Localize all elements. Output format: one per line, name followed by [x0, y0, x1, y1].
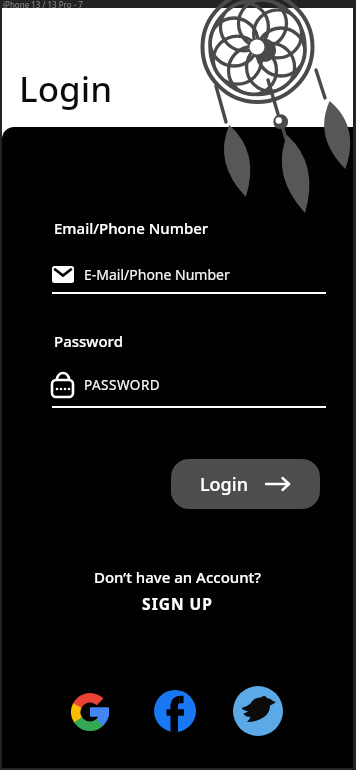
button[interactable] [70, 692, 110, 732]
staticText: Password [54, 331, 123, 351]
button[interactable] [233, 686, 283, 736]
staticText: Email/Phone Number [54, 218, 209, 238]
staticText: iPhone 13 / 13 Pro - 7 [3, 0, 83, 10]
button[interactable]: PASSWORD [52, 367, 326, 403]
staticText: Login [200, 472, 248, 497]
button[interactable]: SIGN UP [2, 593, 353, 614]
staticText: PASSWORD [84, 376, 161, 394]
button[interactable] [154, 690, 196, 732]
staticText: Login [19, 65, 113, 113]
staticText: E-Mail/Phone Number [84, 265, 230, 284]
button[interactable]: E-Mail/Phone Number [52, 256, 326, 292]
button[interactable]: Login [171, 459, 320, 509]
staticText: Don’t have an Account? [2, 567, 353, 587]
